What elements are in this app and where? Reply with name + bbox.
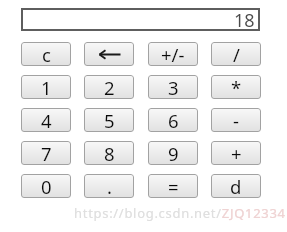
- staticText: 9: [168, 141, 179, 165]
- staticText: 1: [41, 75, 52, 99]
- button[interactable]: +: [211, 141, 261, 165]
- staticText: .: [107, 174, 112, 198]
- button[interactable]: c: [21, 42, 71, 66]
- button[interactable]: 6: [148, 108, 198, 132]
- staticText: d: [230, 174, 242, 198]
- button[interactable]: 0: [21, 174, 71, 198]
- button[interactable]: -: [211, 108, 261, 132]
- button[interactable]: 4: [21, 108, 71, 132]
- staticText: 0: [41, 174, 52, 198]
- staticText: 18: [234, 8, 255, 31]
- staticText: c: [42, 42, 51, 66]
- button[interactable]: *: [211, 75, 261, 99]
- staticText: -: [233, 108, 239, 132]
- staticText: =: [168, 174, 179, 198]
- button[interactable]: +/-: [148, 42, 198, 66]
- staticText: /: [233, 42, 240, 66]
- staticText: 3: [168, 75, 179, 99]
- button[interactable]: =: [148, 174, 198, 198]
- button[interactable]: 1: [21, 75, 71, 99]
- staticText: 8: [104, 141, 115, 165]
- staticText: +: [231, 141, 242, 165]
- button[interactable]: 9: [148, 141, 198, 165]
- button[interactable]: 18: [21, 8, 260, 31]
- button[interactable]: .: [84, 174, 134, 198]
- button[interactable]: 2: [84, 75, 134, 99]
- staticText: https://blog.csdn.net/ZJQ12334: [74, 204, 286, 222]
- staticText: *: [231, 75, 242, 99]
- button[interactable]: 5: [84, 108, 134, 132]
- button[interactable]: 3: [148, 75, 198, 99]
- staticText: +/-: [161, 42, 185, 66]
- button[interactable]: 7: [21, 141, 71, 165]
- staticText: 5: [104, 108, 115, 132]
- staticText: 6: [168, 108, 179, 132]
- button[interactable]: 8: [84, 141, 134, 165]
- button[interactable]: /: [211, 42, 261, 66]
- staticText: 2: [104, 75, 115, 99]
- button[interactable]: d: [211, 174, 261, 198]
- button[interactable]: [84, 42, 134, 66]
- staticText: 4: [41, 108, 52, 132]
- staticText: 7: [41, 141, 52, 165]
